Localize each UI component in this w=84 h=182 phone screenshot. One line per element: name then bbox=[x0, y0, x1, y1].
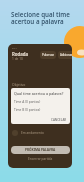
staticText: PRÓXIMA PALAVRA bbox=[25, 148, 56, 152]
staticText: Em andamento bbox=[21, 131, 44, 135]
staticText: Rodada bbox=[12, 51, 28, 57]
staticText: Qual time acertou a palavra? bbox=[14, 91, 64, 96]
button[interactable]: Em andamento bbox=[12, 130, 69, 136]
button[interactable]: Pular vez bbox=[40, 51, 56, 59]
button[interactable]: PRÓXIMA PALAVRA bbox=[11, 146, 70, 154]
staticText: Time A (0 pontos) bbox=[14, 100, 41, 104]
button[interactable]: Time B (0 pontos) bbox=[14, 108, 67, 112]
staticText: 1 de 10 bbox=[12, 57, 23, 61]
button[interactable]: Time A (0 pontos) bbox=[14, 100, 67, 104]
staticText: Adicionar tempo bbox=[60, 53, 72, 57]
button[interactable]: Encerrar partida bbox=[28, 157, 53, 161]
button[interactable]: CANCELAR bbox=[51, 118, 70, 124]
staticText: CANCELAR bbox=[51, 118, 67, 122]
button[interactable]: Adicionar tempo bbox=[58, 51, 72, 59]
staticText: 9:41 bbox=[12, 46, 17, 49]
staticText: Selecione qual time acertou a palavra bbox=[11, 10, 70, 26]
staticText: Objetivo bbox=[12, 82, 26, 87]
staticText: Time B (0 pontos) bbox=[14, 108, 41, 112]
staticText: Pular vez bbox=[42, 53, 54, 57]
